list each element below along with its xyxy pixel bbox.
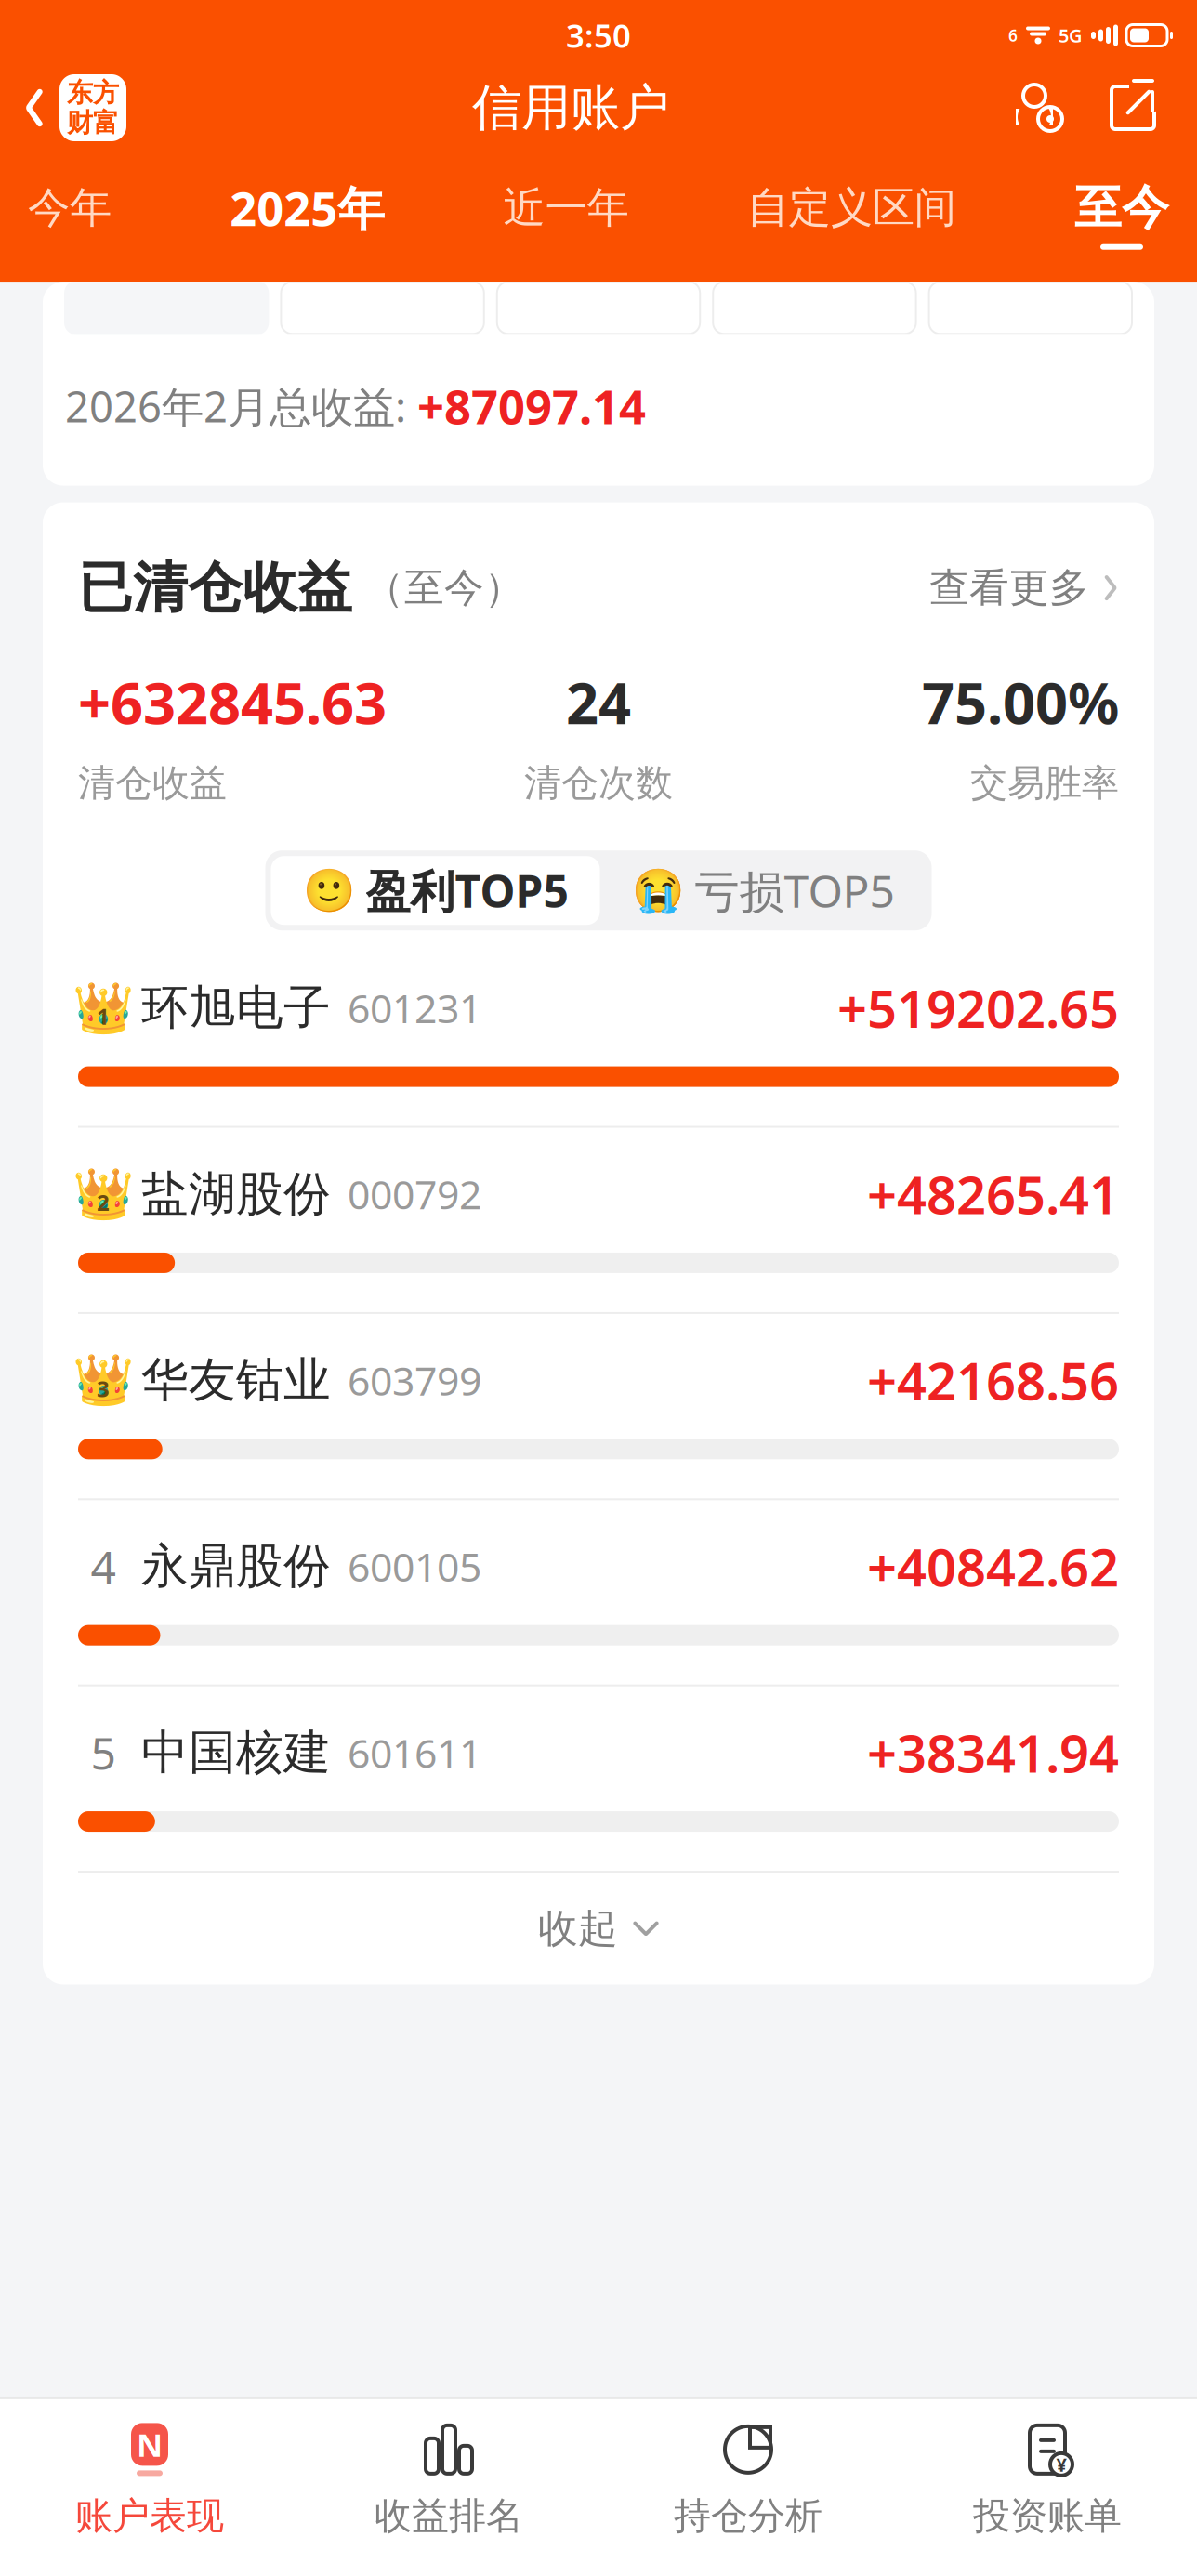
staticText: 3:50 — [566, 14, 631, 57]
button[interactable]: 收益排名 — [299, 2415, 598, 2544]
staticText: 持仓分析 — [674, 2493, 822, 2539]
staticText: 👑 — [72, 979, 134, 1036]
staticText: 投资账单 — [973, 2493, 1122, 2539]
button[interactable]: 👑 — [78, 1128, 1119, 1314]
staticText: 5 — [91, 1723, 116, 1782]
button[interactable]: 2025年 — [226, 177, 389, 252]
button[interactable]: 近一年 — [500, 182, 632, 247]
staticText: 3 — [97, 1374, 110, 1403]
staticText: 清仓次数 — [524, 760, 673, 806]
button[interactable]: 👑 — [78, 1314, 1119, 1500]
staticText: 2 — [97, 1187, 110, 1217]
staticText: 华友钴业 — [141, 1351, 331, 1409]
staticText: 000792 — [348, 1168, 481, 1220]
staticText: 603799 — [348, 1354, 481, 1406]
staticText: +632845.63 — [78, 664, 387, 740]
button[interactable]: 👑 — [78, 942, 1119, 1128]
button[interactable]: 4 — [78, 1500, 1119, 1686]
staticText: 清仓收益 — [78, 760, 227, 806]
staticText: 😭 — [631, 866, 684, 915]
button[interactable]: 5 — [78, 1686, 1119, 1873]
staticText: +48265.41 — [867, 1159, 1119, 1229]
staticText: 盐湖股份 — [141, 1165, 331, 1223]
staticText: 🙂 — [303, 866, 355, 915]
staticText: 收益排名 — [375, 2493, 523, 2539]
staticText: 亏损TOP5 — [695, 861, 894, 920]
button[interactable]: 今年 — [24, 182, 115, 247]
button[interactable]: ¥ — [898, 2415, 1197, 2544]
staticText: 信用账户 — [472, 77, 669, 138]
staticText: +519202.65 — [837, 973, 1119, 1042]
button[interactable]: 隐藏金额 — [1015, 83, 1065, 133]
staticText: ¥ — [1056, 2452, 1066, 2477]
staticText: 24 — [566, 664, 631, 740]
button[interactable]: 🙂 — [271, 856, 600, 925]
staticText: 4 — [91, 1537, 116, 1596]
staticText: 环旭电子 — [141, 979, 331, 1037]
staticText: 查看更多 — [929, 564, 1089, 612]
staticText: +38341.94 — [867, 1718, 1119, 1787]
staticText: 收起 — [538, 1904, 618, 1953]
staticText: N — [137, 2423, 163, 2466]
staticText: +87097.14 — [417, 375, 646, 437]
staticText: 5G — [1059, 23, 1083, 48]
button[interactable]: 持仓分析 — [598, 2415, 898, 2544]
button[interactable]: 😭 — [600, 856, 926, 925]
staticText: （至今） — [352, 564, 524, 612]
staticText: 东方 — [67, 77, 119, 109]
staticText: 近一年 — [503, 182, 629, 234]
button[interactable]: N — [0, 2415, 299, 2544]
staticText: 自定义区间 — [747, 182, 956, 234]
staticText: 600105 — [348, 1540, 481, 1593]
button[interactable]: 返回 东方财富 — [0, 65, 126, 151]
staticText: +42168.56 — [867, 1346, 1119, 1415]
staticText: 今年 — [28, 182, 112, 234]
staticText: 账户表现 — [75, 2493, 224, 2539]
staticText: 601231 — [348, 981, 481, 1034]
button[interactable]: 查看更多 — [929, 556, 1119, 620]
staticText: 601611 — [348, 1726, 481, 1779]
staticText: 财富 — [67, 107, 119, 139]
staticText: 6 — [1008, 25, 1018, 46]
staticText: 2025年 — [230, 177, 385, 239]
button[interactable] — [497, 282, 700, 334]
staticText: 至今 — [1074, 179, 1169, 237]
button[interactable] — [929, 282, 1132, 334]
staticText: 👑 — [72, 1166, 134, 1222]
staticText: 1 — [97, 1001, 110, 1031]
staticText: 2026年2月总收益: — [65, 378, 417, 434]
staticText: 75.00% — [922, 664, 1119, 740]
staticText: 中国核建 — [141, 1724, 331, 1781]
button[interactable] — [713, 282, 916, 334]
button[interactable]: 至今 — [1071, 179, 1173, 250]
staticText: 👑 — [72, 1352, 134, 1408]
staticText: 永鼎股份 — [141, 1537, 331, 1595]
button[interactable] — [281, 282, 484, 334]
button[interactable]: 收起 — [43, 1873, 1154, 1984]
staticText: 已清仓收益 — [78, 554, 352, 621]
staticText: 交易胜率 — [970, 760, 1119, 806]
staticText: +40842.62 — [867, 1532, 1119, 1601]
staticText: 盈利TOP5 — [366, 861, 568, 920]
button[interactable]: 自定义区间 — [743, 182, 960, 247]
button[interactable]: 分享 — [1106, 81, 1160, 135]
